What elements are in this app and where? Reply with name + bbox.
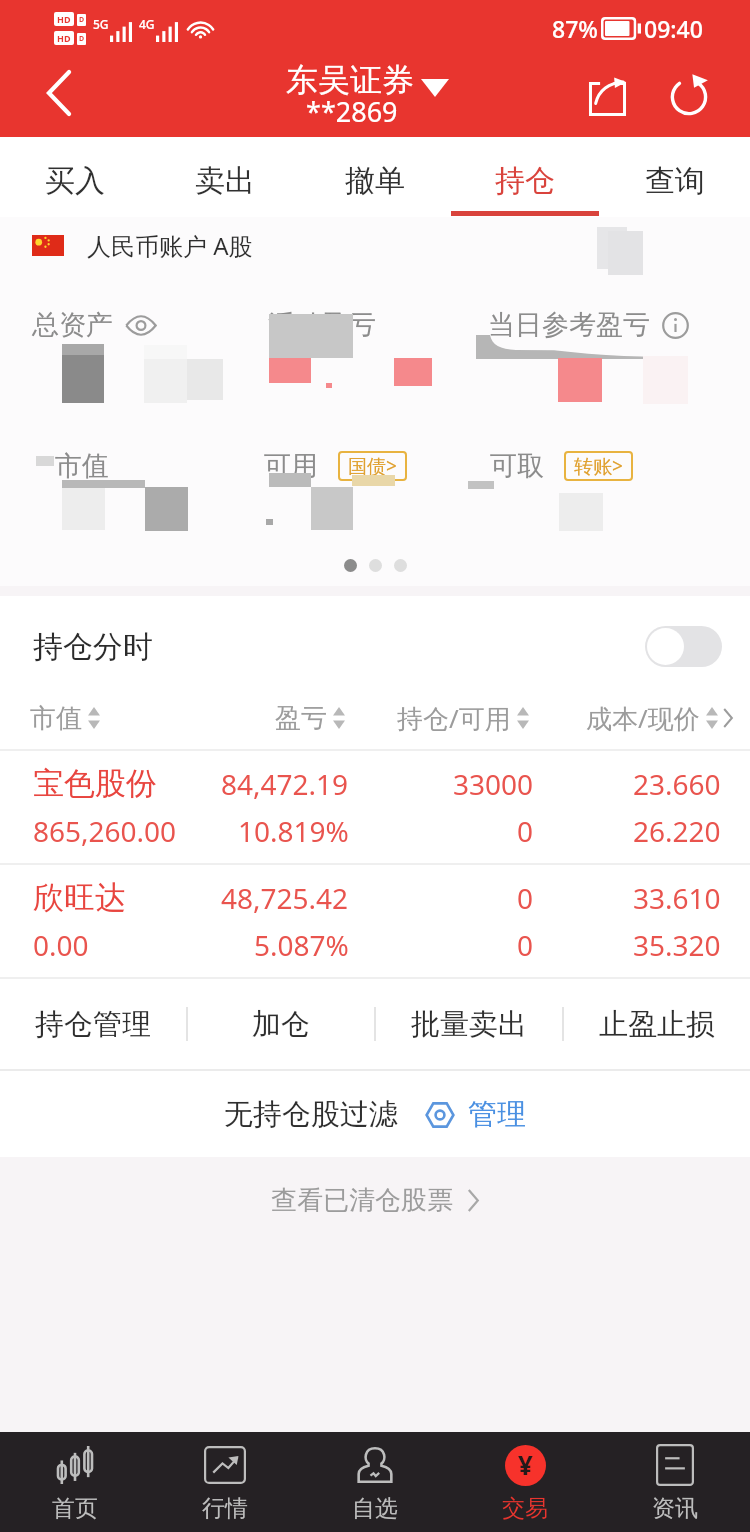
staticText: 查看已清仓股票	[271, 1184, 453, 1217]
staticText: 84,472.19	[221, 765, 349, 803]
button[interactable]: 买入	[0, 137, 150, 217]
staticText: 持仓分时	[33, 628, 153, 666]
staticText: 国债>	[348, 453, 397, 479]
button[interactable]: 查询	[600, 137, 750, 217]
staticText: 87%	[552, 13, 598, 44]
staticText: 33.610	[633, 879, 721, 917]
staticText: 总资产	[32, 308, 113, 342]
staticText: 行情	[202, 1494, 248, 1523]
button[interactable]: Refresh	[648, 57, 730, 137]
staticText: 35.320	[633, 926, 721, 964]
button[interactable]: 批量卖出	[376, 979, 562, 1069]
staticText: 无持仓股过滤	[224, 1096, 398, 1133]
button[interactable]: Toggle intraday chart	[645, 626, 722, 667]
staticText: 自选	[352, 1494, 398, 1523]
button[interactable]: 市值	[30, 687, 100, 749]
staticText: 4G	[139, 16, 155, 32]
button[interactable]: 自选	[300, 1432, 450, 1532]
button[interactable]: 查看已清仓股票	[0, 1157, 750, 1243]
staticText: 管理	[468, 1096, 526, 1133]
button[interactable]: 欣旺达	[0, 865, 750, 977]
staticText: 0.00	[33, 926, 89, 964]
button[interactable]: 持仓管理	[0, 979, 186, 1069]
staticText: 26.220	[633, 812, 721, 850]
staticText: 市值	[55, 449, 109, 483]
staticText: 23.660	[633, 765, 721, 803]
staticText: 首页	[52, 1494, 98, 1523]
button[interactable]: 持仓/可用	[397, 687, 529, 749]
staticText: 资讯	[652, 1494, 698, 1523]
button[interactable]: 加仓	[188, 979, 374, 1069]
staticText: **2869	[306, 93, 398, 130]
staticText: D	[79, 15, 85, 25]
button[interactable]: 撤单	[300, 137, 450, 217]
button[interactable]: 宝色股份	[0, 751, 750, 863]
button[interactable]: 行情	[150, 1432, 300, 1532]
staticText: 市值	[30, 702, 82, 735]
button[interactable]: ¥	[450, 1432, 600, 1532]
staticText: 持仓	[495, 162, 555, 200]
staticText: 加仓	[252, 1006, 310, 1043]
staticText: 东吴证券	[286, 60, 414, 100]
staticText: 撤单	[345, 162, 405, 200]
staticText: 交易	[502, 1494, 548, 1523]
staticText: 成本/现价	[586, 700, 700, 736]
staticText: 09:40	[644, 13, 703, 44]
button[interactable]: Share	[566, 57, 648, 137]
staticText: 5.087%	[254, 926, 349, 964]
staticText: D	[79, 34, 85, 44]
staticText: 33000	[453, 765, 534, 803]
staticText: 10.819%	[238, 812, 349, 850]
staticText: 可取	[490, 449, 544, 483]
staticText: 宝色股份	[33, 764, 157, 803]
staticText: 批量卖出	[411, 1006, 527, 1043]
staticText: 持仓管理	[35, 1006, 151, 1043]
button[interactable]: 卖出	[150, 137, 300, 217]
button[interactable]: 盈亏	[275, 687, 345, 749]
staticText: 48,725.42	[221, 879, 349, 917]
staticText: 当日参考盈亏	[488, 308, 650, 342]
button[interactable]: 止盈止损	[564, 979, 750, 1069]
staticText: 转账>	[574, 453, 623, 479]
staticText: 865,260.00	[33, 812, 177, 850]
staticText: 止盈止损	[599, 1006, 715, 1043]
staticText: 可用	[264, 449, 318, 483]
button[interactable]: 成本/现价	[586, 687, 733, 749]
staticText: 卖出	[195, 162, 255, 200]
staticText: 浮动盈亏	[268, 308, 376, 342]
staticText: HD	[57, 13, 71, 25]
staticText: ¥	[518, 1447, 533, 1482]
staticText: 查询	[645, 162, 705, 200]
staticText: 0	[517, 926, 534, 964]
button[interactable]: 转账>	[564, 451, 633, 481]
staticText: 持仓/可用	[397, 700, 511, 736]
staticText: 5G	[93, 16, 109, 32]
staticText: HD	[57, 32, 71, 44]
staticText: 欣旺达	[33, 878, 126, 917]
button[interactable]: 持仓	[450, 137, 600, 217]
button[interactable]: 国债>	[338, 451, 407, 481]
staticText: 0	[517, 879, 534, 917]
staticText: 人民币账户 A股	[87, 229, 253, 262]
button[interactable]: 资讯	[600, 1432, 750, 1532]
staticText: 盈亏	[275, 702, 327, 735]
button[interactable]: Back	[0, 57, 120, 137]
staticText: 0	[517, 812, 534, 850]
button[interactable]: 首页	[0, 1432, 150, 1532]
button[interactable]: 无持仓股过滤	[214, 1086, 536, 1143]
staticText: 买入	[45, 162, 105, 200]
